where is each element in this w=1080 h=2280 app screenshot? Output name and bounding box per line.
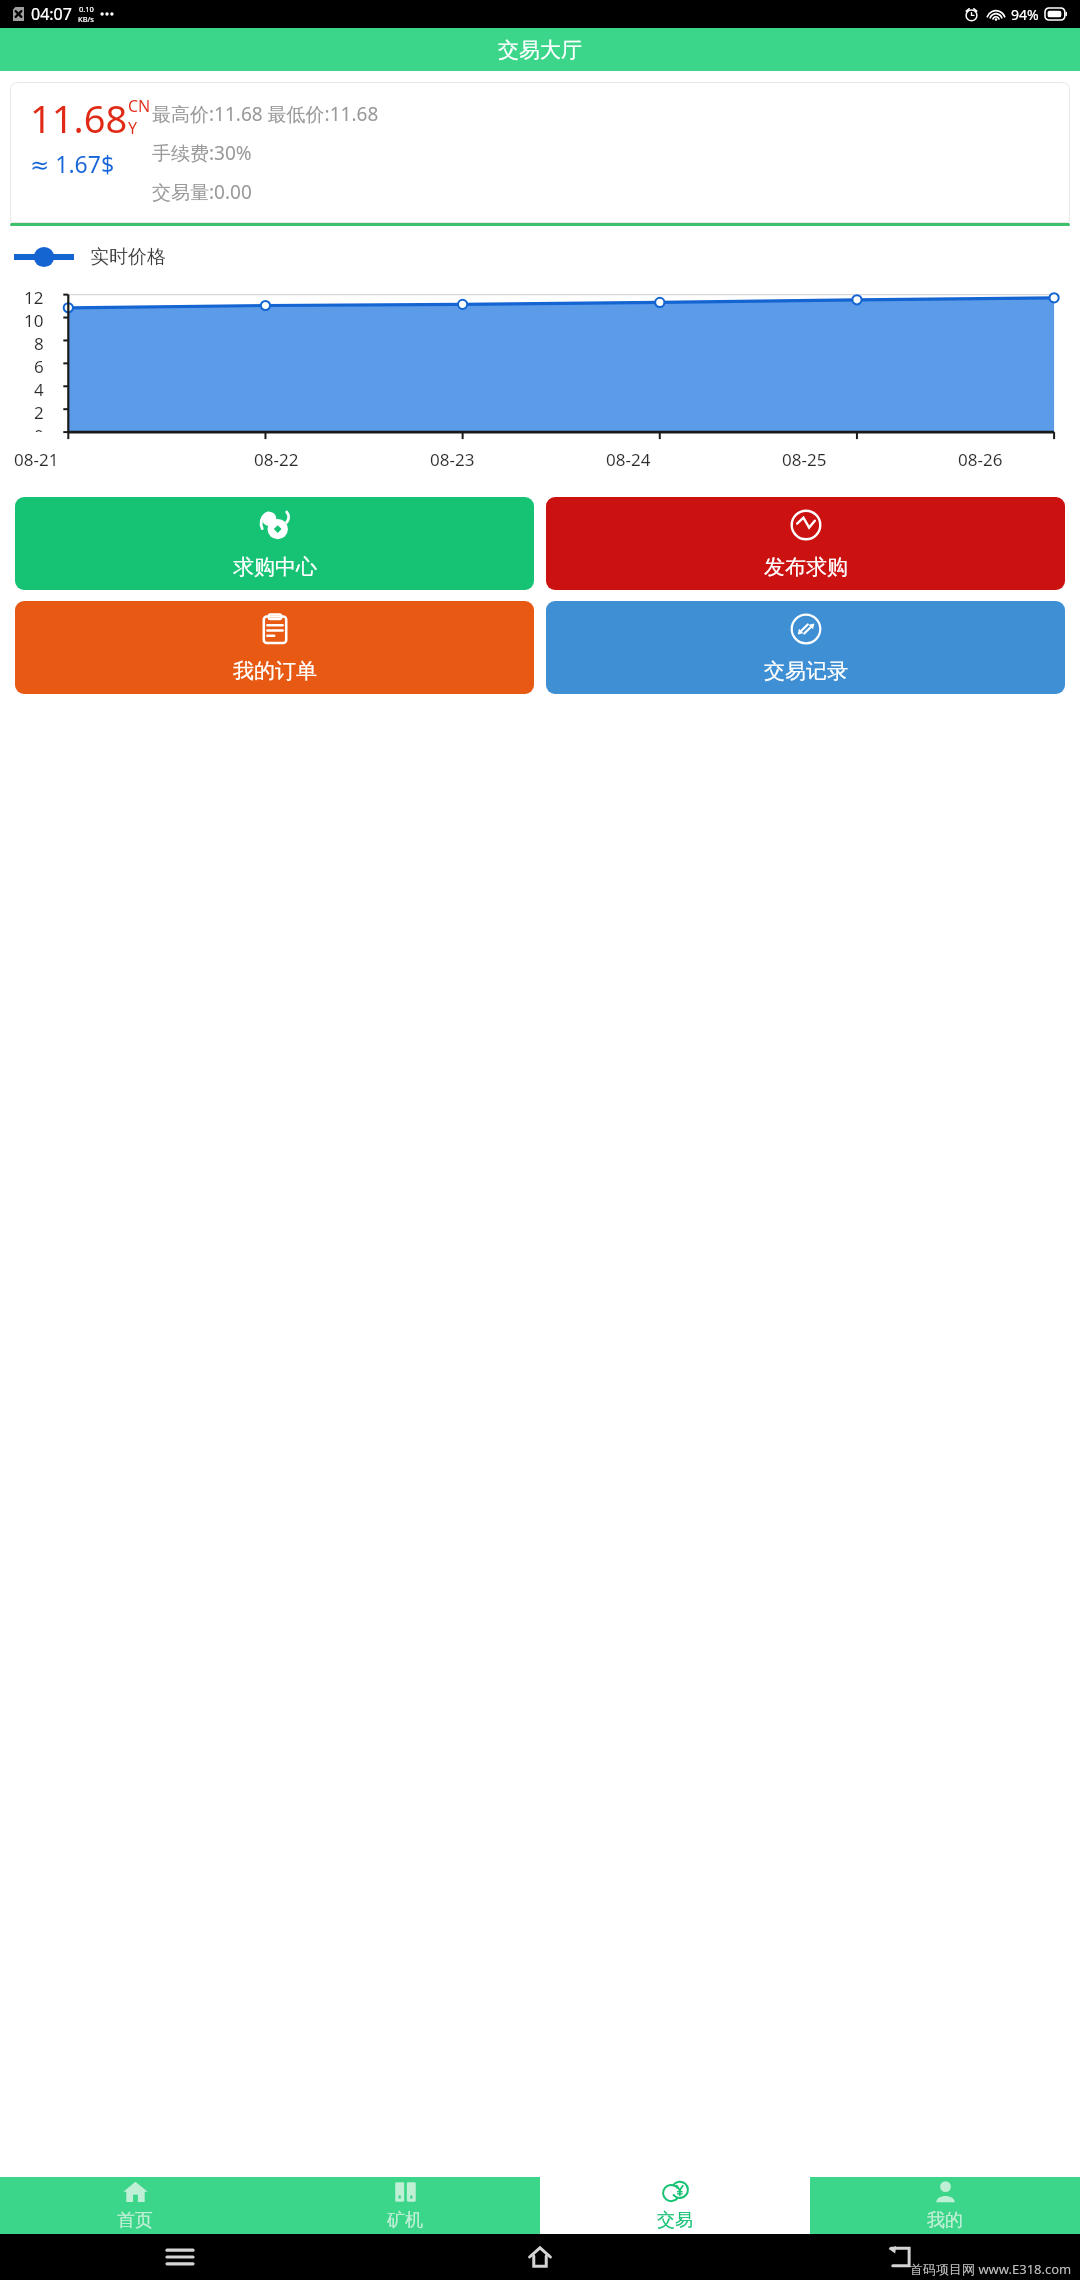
staticText: KB/s: [78, 14, 94, 24]
staticText: 我的订单: [233, 658, 317, 684]
staticText: 10: [24, 309, 44, 332]
staticText: 04:07: [31, 3, 72, 25]
staticText: 求购中心: [233, 554, 317, 580]
staticText: ≈ 1.67$: [30, 148, 115, 179]
staticText: 最高价:11.68 最低价:11.68: [152, 101, 379, 127]
staticText: 交易记录: [764, 658, 848, 684]
staticText: 2: [34, 401, 44, 424]
button[interactable]: 发布求购: [546, 497, 1065, 590]
staticText: 08-24: [606, 448, 651, 471]
staticText: 08-23: [430, 448, 475, 471]
staticText: 08-25: [782, 448, 827, 471]
staticText: 交易量:0.00: [152, 179, 252, 205]
staticText: 手续费:30%: [152, 140, 252, 166]
button[interactable]: 我的订单: [15, 601, 534, 694]
staticText: 实时价格: [90, 245, 166, 269]
staticText: 11.68: [30, 92, 128, 144]
button[interactable]: 我的: [810, 2177, 1080, 2234]
button[interactable]: Home: [360, 2234, 720, 2280]
staticText: 首页: [117, 2209, 153, 2232]
staticText: CNY: [128, 95, 152, 139]
button[interactable]: Recent apps: [0, 2234, 360, 2280]
button[interactable]: 矿机: [270, 2177, 540, 2234]
staticText: 0.10: [79, 4, 94, 14]
staticText: 08-22: [254, 448, 299, 471]
staticText: 我的: [927, 2209, 963, 2232]
staticText: 08-21: [14, 448, 59, 471]
staticText: 8: [34, 332, 44, 355]
button[interactable]: 11.68: [10, 82, 1070, 223]
staticText: 12: [24, 286, 44, 309]
staticText: 首码项目网 www.E318.com: [910, 2260, 1072, 2278]
staticText: 矿机: [387, 2209, 423, 2232]
staticText: 交易: [657, 2209, 693, 2232]
staticText: 08-26: [958, 448, 1003, 471]
button[interactable]: 首页: [0, 2177, 270, 2234]
button[interactable]: 交易: [540, 2177, 810, 2234]
staticText: 发布求购: [764, 554, 848, 580]
button[interactable]: 交易记录: [546, 601, 1065, 694]
button[interactable]: 求购中心: [15, 497, 534, 590]
staticText: 交易大厅: [498, 37, 582, 63]
staticText: 4: [34, 378, 44, 401]
staticText: 0: [34, 424, 44, 432]
button[interactable]: Back: [720, 2234, 1080, 2280]
staticText: 6: [34, 355, 44, 378]
staticText: 94%: [1011, 5, 1039, 24]
